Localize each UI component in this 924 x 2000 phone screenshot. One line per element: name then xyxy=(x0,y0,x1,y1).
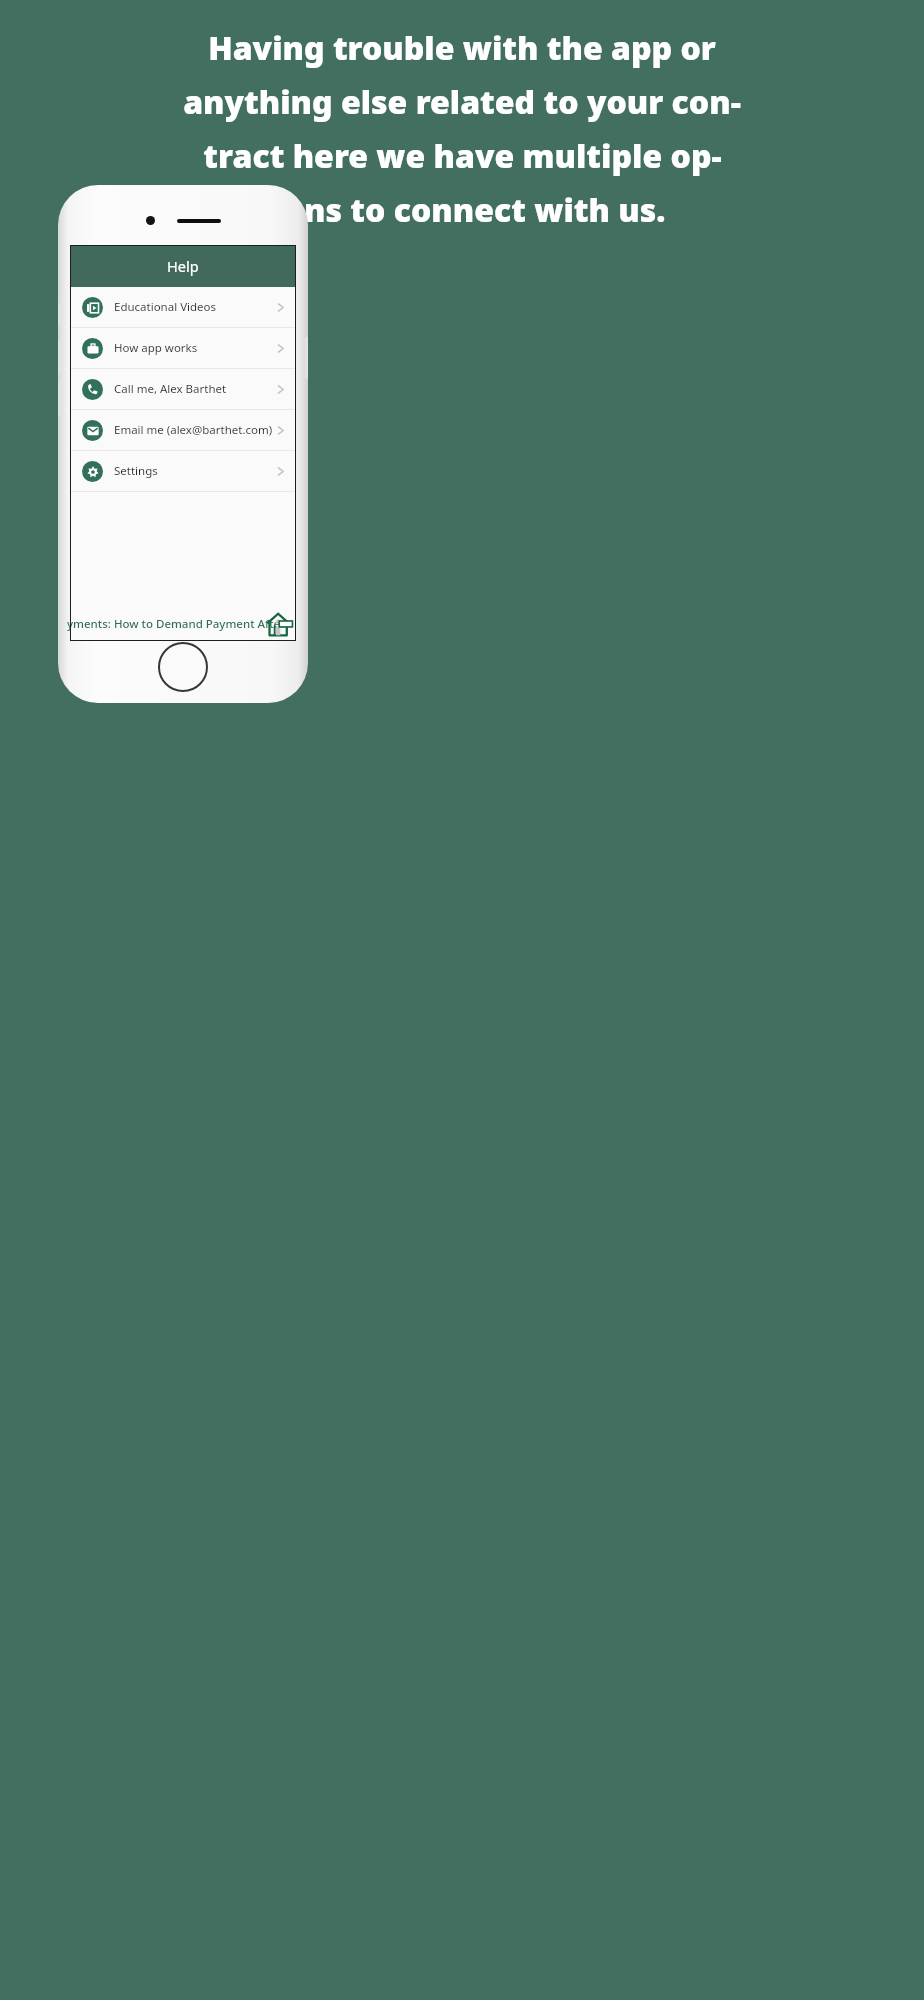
button[interactable]: Email me (alex@barthet.com) xyxy=(70,410,296,450)
staticText: How app works xyxy=(114,340,274,356)
button[interactable]: How app works xyxy=(70,328,296,368)
staticText: yments: How to Demand Payment After Reco… xyxy=(67,616,293,632)
staticText: tions to connect with us. xyxy=(258,188,666,232)
button[interactable]: Educational Videos xyxy=(70,287,296,327)
button[interactable]: Settings xyxy=(70,451,296,491)
staticText: Having trouble with the app or xyxy=(208,26,716,70)
staticText: Help xyxy=(167,256,199,276)
staticText: tract here we have multiple op- xyxy=(203,134,722,178)
staticText: Settings xyxy=(114,463,274,479)
staticText: Email me (alex@barthet.com) xyxy=(114,422,274,438)
button[interactable]: Call me, Alex Barthet (305-347-5295) xyxy=(70,369,296,409)
staticText: anything else related to your con- xyxy=(183,80,741,124)
staticText: Call me, Alex Barthet (305-347-5295) xyxy=(114,381,274,397)
staticText: Educational Videos xyxy=(114,299,274,315)
button[interactable]: Home xyxy=(158,642,208,692)
